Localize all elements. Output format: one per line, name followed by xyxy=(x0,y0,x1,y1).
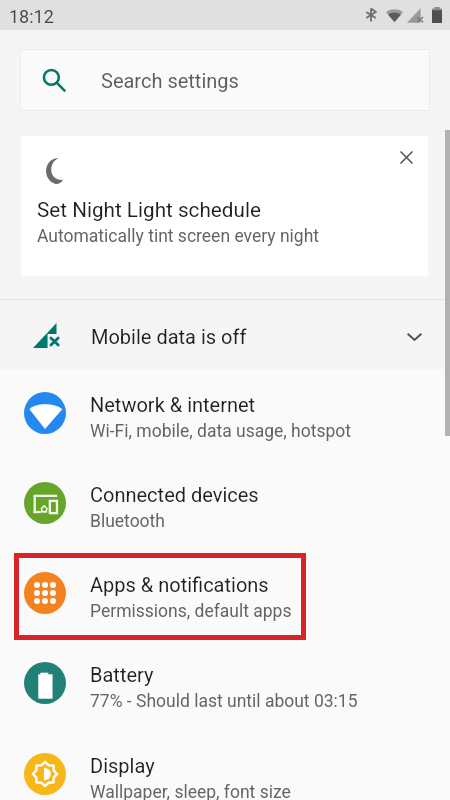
staticText: Battery xyxy=(90,663,154,686)
staticText: Network & internet xyxy=(90,393,256,416)
staticText: 77% - Should last until about 03:15 xyxy=(90,691,358,712)
button[interactable]: Apps & notifications xyxy=(0,550,450,640)
staticText: Apps & notifications xyxy=(90,573,269,596)
staticText: Wallpaper, sleep, font size xyxy=(90,782,291,800)
staticText: Automatically tint screen every night xyxy=(37,226,320,247)
staticText: Wi-Fi, mobile, data usage, hotspot xyxy=(90,421,352,442)
staticText: Permissions, default apps xyxy=(90,601,292,622)
staticText: Display xyxy=(90,754,155,777)
staticText: Set Night Light schedule xyxy=(37,198,261,222)
button[interactable]: Set Night Light schedule xyxy=(21,136,428,276)
button[interactable]: Battery xyxy=(0,640,450,730)
staticText: Connected devices xyxy=(90,483,259,506)
staticText: Mobile data is off xyxy=(91,325,247,348)
button[interactable]: Expand mobile data xyxy=(396,318,432,354)
staticText: Bluetooth xyxy=(90,511,165,532)
staticText: Search settings xyxy=(101,69,239,92)
button[interactable]: Connected devices xyxy=(0,460,450,550)
button[interactable]: Network & internet xyxy=(0,370,450,460)
button[interactable]: Search settings xyxy=(20,49,430,111)
button[interactable]: Mobile data is off xyxy=(0,300,450,372)
staticText: 18:12 xyxy=(9,6,54,27)
button[interactable]: Dismiss suggestion xyxy=(388,139,424,175)
button[interactable]: Display xyxy=(0,731,450,800)
